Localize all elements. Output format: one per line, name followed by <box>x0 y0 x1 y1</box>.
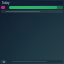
button[interactable] <box>1 10 63 13</box>
button[interactable] <box>9 6 63 9</box>
button[interactable]: Activity <box>1 6 5 9</box>
button[interactable] <box>7 60 63 63</box>
button[interactable]: Open <box>1 60 6 63</box>
button[interactable]: Today <box>1 1 63 5</box>
staticText: Today <box>2 1 10 5</box>
